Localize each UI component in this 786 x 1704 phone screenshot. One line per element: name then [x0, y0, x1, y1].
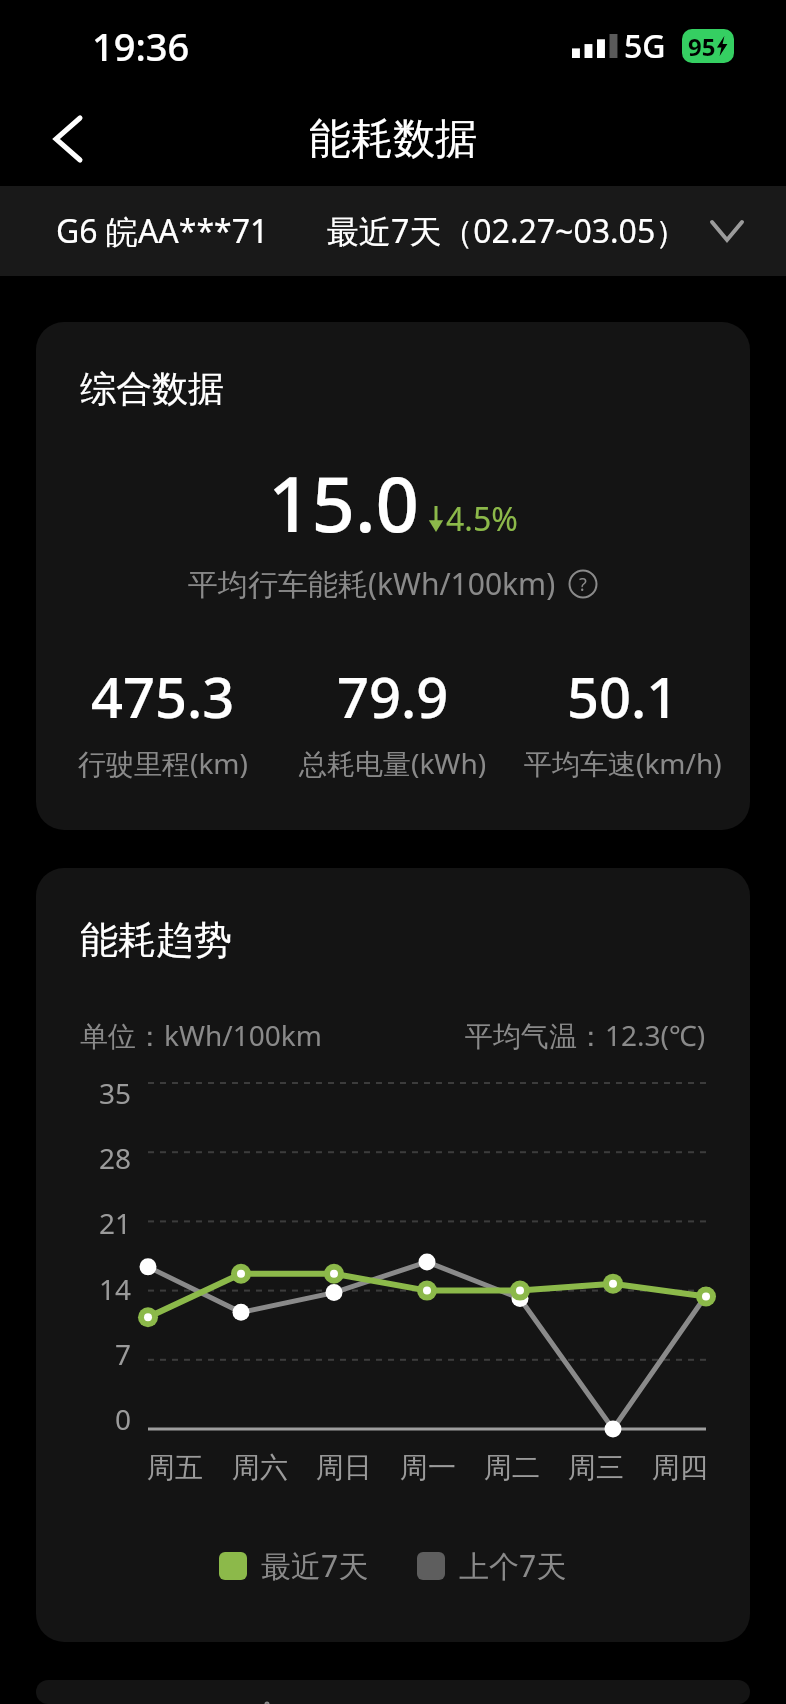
staticText: 28: [99, 1139, 132, 1177]
staticText: 14: [99, 1270, 132, 1308]
staticText: 35: [99, 1074, 132, 1112]
staticText: 能耗趋势: [80, 916, 232, 964]
staticText: 最近7天: [261, 1545, 369, 1586]
staticText: 19:36: [92, 20, 190, 72]
staticText: 平均气温：12.3(℃): [465, 1016, 706, 1054]
other: Change period: [712, 222, 742, 240]
staticText: 21: [99, 1204, 132, 1242]
staticText: 周日: [316, 1450, 372, 1485]
staticText: ?: [579, 572, 587, 597]
button[interactable]: 最近7天: [219, 1545, 369, 1586]
staticText: 行驶里程(km): [78, 744, 248, 782]
staticText: 周一: [400, 1450, 456, 1485]
button[interactable]: G6 皖AA***71: [0, 186, 786, 276]
staticText: 最近7天（02.27~03.05）: [327, 209, 688, 253]
staticText: 4.5%: [446, 497, 518, 541]
staticText: 95: [688, 30, 716, 63]
staticText: 周二: [484, 1450, 540, 1485]
staticText: 能耗数据: [309, 113, 477, 166]
staticText: 上个7天: [459, 1545, 567, 1586]
staticText: G6 皖AA***71: [56, 209, 269, 253]
staticText: 周五: [147, 1450, 203, 1485]
staticText: 总耗电量(kWh): [299, 744, 487, 782]
staticText: 综合数据: [80, 366, 224, 411]
staticText: 5G: [624, 24, 666, 68]
staticText: 周四: [652, 1450, 708, 1485]
staticText: 平均车速(km/h): [524, 744, 722, 782]
staticText: 0: [115, 1400, 132, 1438]
staticText: 50.1: [567, 658, 679, 734]
button[interactable]: Info: [568, 569, 598, 599]
staticText: 单位：kWh/100km: [80, 1016, 322, 1054]
button[interactable]: 上个7天: [417, 1545, 567, 1586]
button[interactable]: Back: [20, 92, 116, 186]
staticText: 475.3: [91, 658, 235, 734]
staticText: 79.9: [337, 658, 449, 734]
staticText: 平均行车能耗(kWh/100km): [188, 563, 556, 604]
staticText: 周六: [232, 1450, 288, 1485]
staticText: 7: [115, 1335, 132, 1373]
staticText: 周三: [568, 1450, 624, 1485]
staticText: 15.0: [268, 451, 420, 555]
